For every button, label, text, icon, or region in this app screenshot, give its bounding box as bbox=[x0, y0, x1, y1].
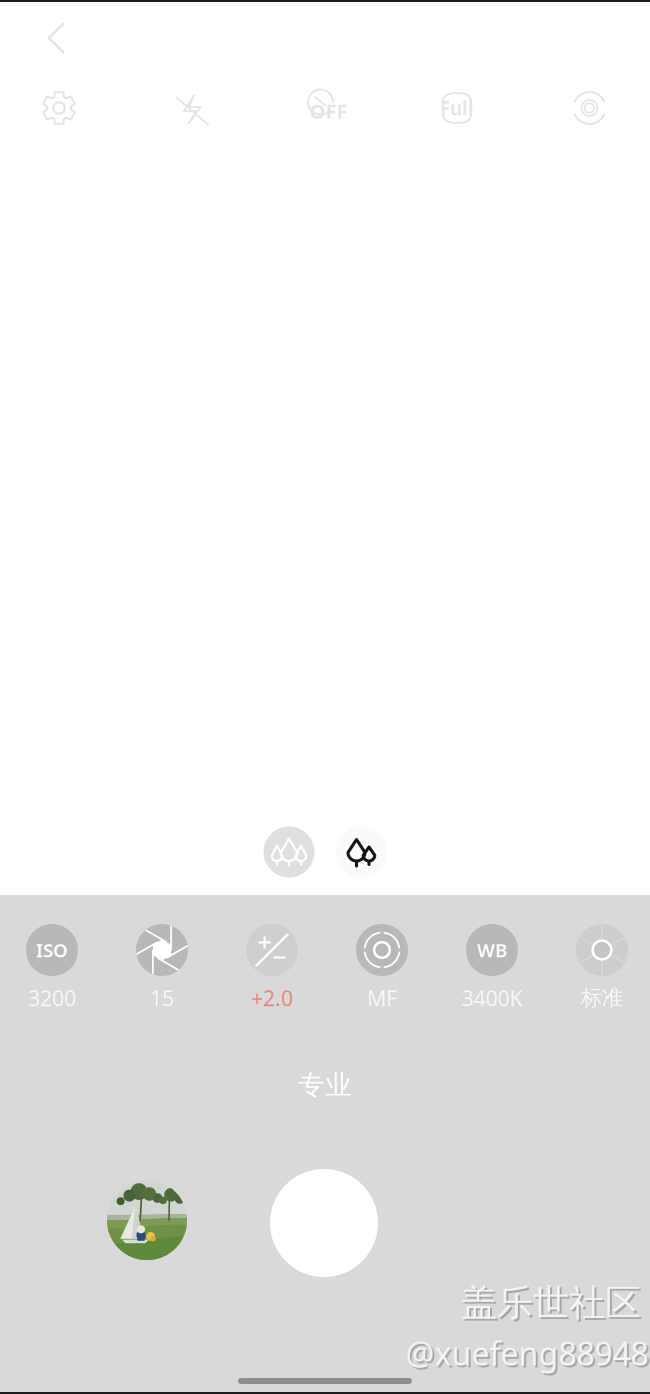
staticText: +2.0 bbox=[251, 984, 293, 1012]
staticText: 盖乐世社区 bbox=[461, 1281, 641, 1325]
button[interactable]: +2.0 bbox=[220, 924, 324, 1032]
button[interactable]: Aspect ratio full bbox=[425, 80, 489, 136]
button[interactable]: 15 bbox=[110, 924, 214, 1032]
button[interactable]: Back bbox=[38, 18, 78, 58]
button[interactable]: MF bbox=[330, 924, 434, 1032]
staticText: OFF bbox=[309, 98, 347, 124]
staticText: @xuefeng88948 bbox=[405, 1332, 648, 1374]
button[interactable]: Timer off bbox=[292, 80, 356, 136]
staticText: Full bbox=[440, 96, 474, 120]
button[interactable]: ISO bbox=[0, 924, 104, 1032]
staticText: @xuefeng88948 bbox=[407, 1334, 650, 1376]
staticText: 3400K bbox=[461, 984, 522, 1012]
button[interactable]: Multi focus bbox=[261, 824, 317, 880]
button[interactable]: Flash off bbox=[160, 80, 224, 136]
button[interactable]: Settings bbox=[27, 80, 91, 136]
staticText: 盖乐世社区 bbox=[463, 1283, 643, 1327]
staticText: ISO bbox=[36, 938, 68, 962]
staticText: 3200 bbox=[28, 984, 76, 1012]
staticText: 标准 bbox=[581, 985, 623, 1011]
button[interactable]: Gallery bbox=[107, 1180, 187, 1260]
button[interactable]: Shutter bbox=[270, 1169, 378, 1277]
button[interactable]: Filters bbox=[557, 80, 621, 136]
button[interactable]: 标准 bbox=[550, 924, 650, 1032]
staticText: MF bbox=[367, 984, 397, 1012]
staticText: 15 bbox=[150, 984, 174, 1012]
button[interactable]: WB bbox=[440, 924, 544, 1032]
staticText: WB bbox=[477, 938, 507, 962]
button[interactable]: Single focus bbox=[333, 824, 389, 880]
staticText: 专业 bbox=[298, 1069, 352, 1101]
